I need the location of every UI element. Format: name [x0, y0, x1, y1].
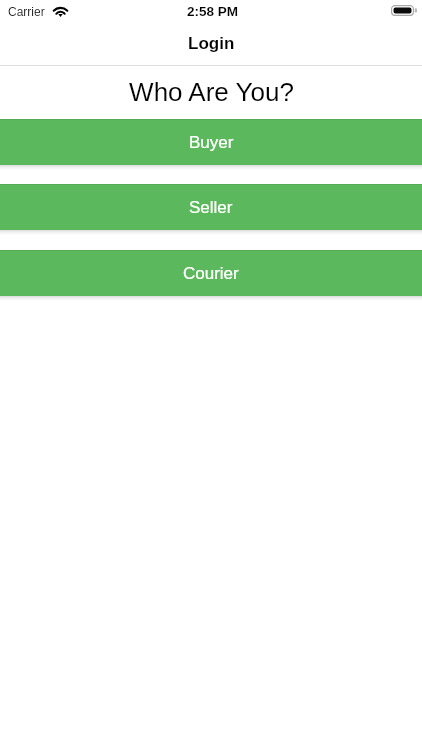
staticText: 2:58 PM: [187, 4, 239, 19]
staticText: Carrier: [8, 5, 45, 18]
other: Wi-Fi signal: [53, 5, 68, 16]
button[interactable]: Buyer: [0, 119, 422, 165]
staticText: Who Are You?: [129, 77, 294, 106]
staticText: Seller: [189, 198, 233, 217]
staticText: Buyer: [189, 133, 234, 152]
staticText: Courier: [183, 264, 239, 283]
button[interactable]: Seller: [0, 184, 422, 230]
button[interactable]: Courier: [0, 250, 422, 296]
staticText: Login: [188, 34, 235, 53]
other: Battery full: [391, 5, 417, 16]
